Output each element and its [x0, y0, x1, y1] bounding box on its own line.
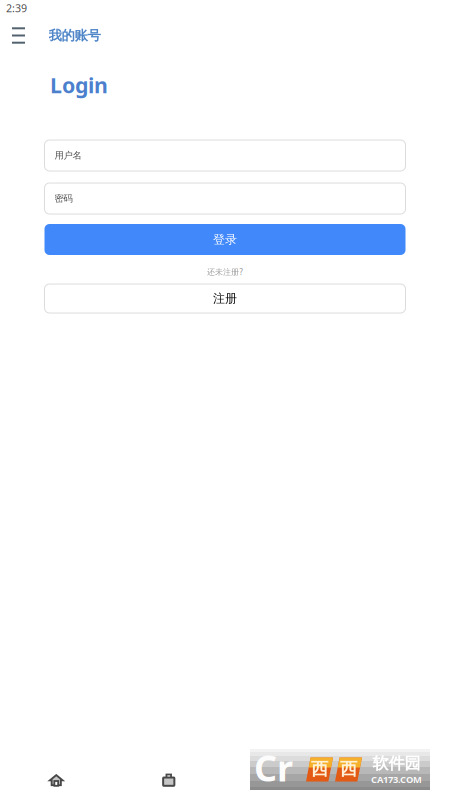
staticText: Login	[50, 71, 108, 99]
staticText: 密码	[54, 193, 72, 204]
staticText: Cr	[254, 744, 293, 791]
button[interactable]: Home	[0, 760, 112, 800]
staticText: 用户名	[54, 150, 81, 161]
staticText: 注册	[213, 291, 237, 306]
button[interactable]: 还未注册?	[44, 263, 405, 281]
button[interactable]: Menu	[0, 20, 48, 51]
staticText: 西	[340, 758, 357, 780]
staticText: 2:39	[6, 1, 27, 15]
button[interactable]: 注册	[44, 284, 405, 313]
staticText: 我的账号	[48, 27, 100, 44]
staticText: 还未注册?	[207, 267, 243, 277]
staticText: CA173.COM	[371, 773, 422, 785]
button[interactable]: 登录	[44, 224, 405, 255]
staticText: 登录	[213, 232, 237, 247]
staticText: 软件园	[372, 753, 420, 773]
staticText: 西	[311, 758, 328, 780]
button[interactable]: Work	[112, 760, 225, 800]
